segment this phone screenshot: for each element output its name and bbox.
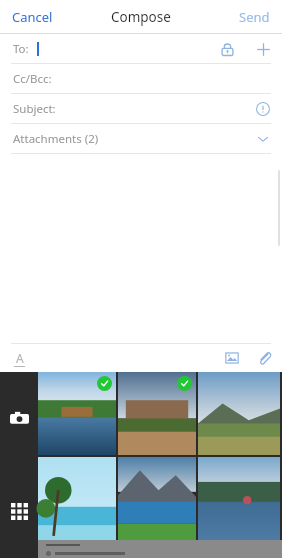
button[interactable]: Send bbox=[227, 2, 282, 32]
button[interactable]: Photo 2 bbox=[118, 372, 196, 455]
staticText: To: bbox=[13, 41, 29, 57]
button[interactable]: Cancel bbox=[0, 2, 65, 32]
button[interactable]: Photo 6 bbox=[198, 457, 280, 540]
button[interactable]: Add recipient bbox=[252, 38, 274, 60]
button[interactable]: Encrypt bbox=[216, 38, 238, 60]
staticText: Attachments (2) bbox=[13, 131, 99, 147]
button[interactable]: Priority bbox=[252, 98, 274, 120]
staticText: Send bbox=[239, 8, 270, 26]
staticText: Subject: bbox=[13, 101, 56, 117]
button[interactable]: Photo 3 bbox=[198, 372, 280, 455]
button[interactable]: To: bbox=[0, 34, 282, 63]
button[interactable]: Gallery bbox=[0, 465, 38, 558]
staticText: Cancel bbox=[12, 8, 53, 26]
button[interactable]: Cc/Bcc: bbox=[0, 64, 282, 93]
button[interactable]: Insert photo bbox=[220, 346, 244, 370]
button[interactable]: Formatting bbox=[8, 347, 30, 369]
button[interactable]: Photo 1 bbox=[38, 372, 116, 455]
button[interactable]: Subject: bbox=[0, 94, 282, 123]
staticText: Compose bbox=[111, 8, 171, 26]
staticText: A bbox=[16, 350, 24, 366]
staticText: Cc/Bcc: bbox=[13, 71, 52, 87]
button[interactable]: Attach file bbox=[252, 346, 276, 370]
button[interactable]: Photo 5 bbox=[118, 457, 196, 540]
button[interactable]: Camera bbox=[0, 372, 38, 465]
button[interactable]: Photo 4 bbox=[38, 457, 116, 540]
button[interactable]: Attachments (2) bbox=[0, 124, 282, 153]
button[interactable]: Expand attachments bbox=[252, 128, 274, 150]
